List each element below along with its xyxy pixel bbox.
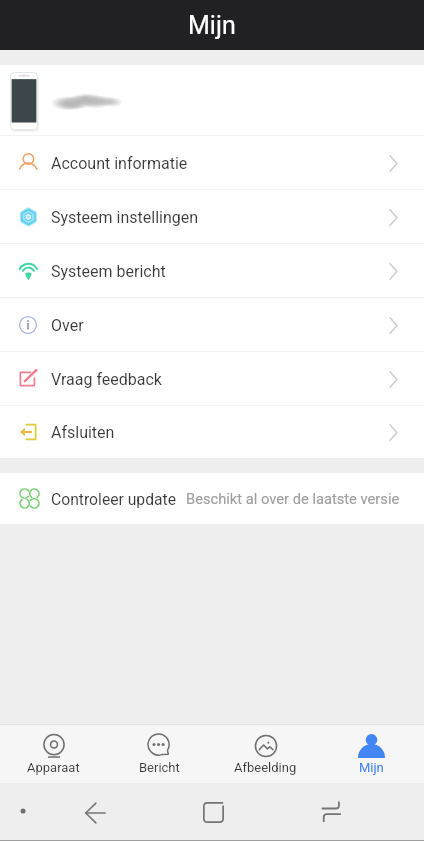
staticText: Over bbox=[51, 316, 84, 335]
button[interactable]: Controleer update bbox=[0, 473, 424, 524]
staticText: Controleer update bbox=[51, 490, 177, 508]
staticText: Vraag feedback bbox=[51, 370, 162, 389]
button[interactable]: Systeem bericht bbox=[0, 244, 424, 298]
button[interactable]: Menu bbox=[7, 795, 39, 827]
staticText: Systeem instellingen bbox=[51, 208, 199, 227]
button[interactable]: Vraag feedback bbox=[0, 352, 424, 406]
staticText: Afbeelding bbox=[234, 760, 297, 775]
staticText: Mijn bbox=[359, 760, 384, 775]
button[interactable]: Apparaat bbox=[0, 724, 106, 783]
button[interactable]: Afsluiten bbox=[0, 406, 424, 458]
button[interactable]: Over bbox=[0, 298, 424, 352]
staticText: Systeem bericht bbox=[51, 262, 166, 281]
button[interactable]: Home bbox=[195, 794, 231, 830]
staticText: Bericht bbox=[139, 760, 180, 775]
button[interactable]: Bericht bbox=[106, 724, 212, 783]
button[interactable]: Recent apps bbox=[313, 794, 349, 830]
button[interactable] bbox=[0, 65, 424, 136]
button[interactable]: Account informatie bbox=[0, 136, 424, 190]
staticText: Apparaat bbox=[27, 760, 80, 775]
button[interactable]: Systeem instellingen bbox=[0, 190, 424, 244]
staticText: Afsluiten bbox=[51, 423, 115, 442]
button[interactable]: Afbeelding bbox=[212, 724, 318, 783]
staticText: Beschikt al over de laatste versie bbox=[186, 490, 400, 507]
staticText: Mijn bbox=[188, 11, 236, 40]
button[interactable]: Mijn bbox=[318, 724, 424, 783]
staticText: Account informatie bbox=[51, 154, 188, 173]
button[interactable]: Back bbox=[77, 795, 113, 831]
